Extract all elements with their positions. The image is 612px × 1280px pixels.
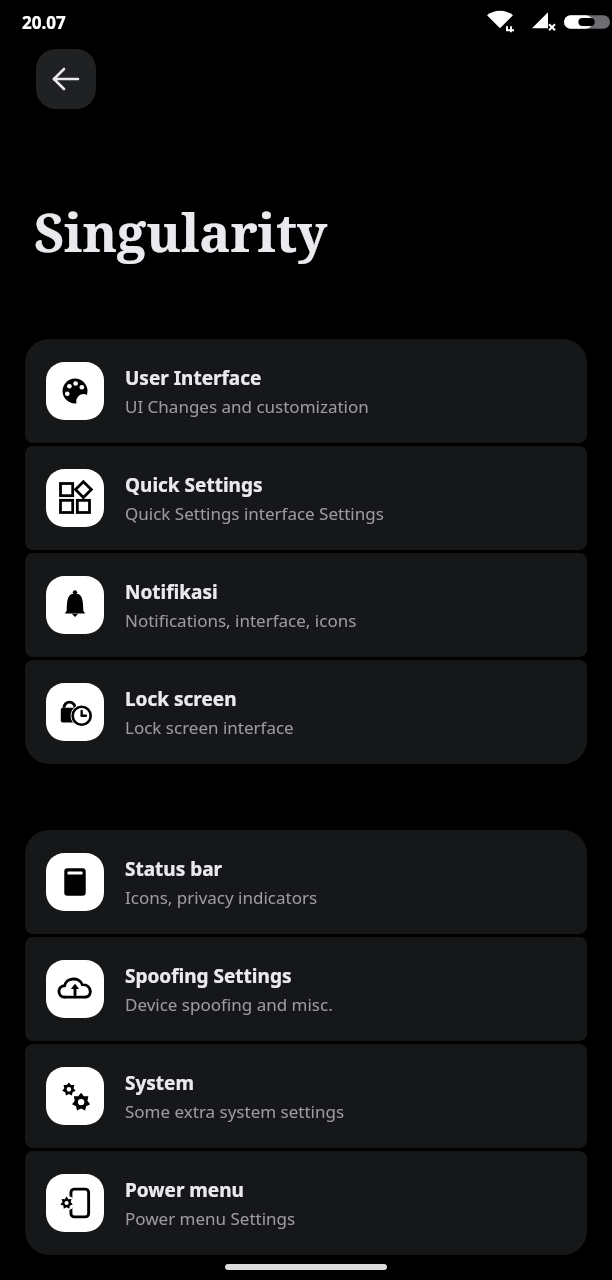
staticText: Singularity	[34, 196, 328, 267]
button[interactable]: Quick Settings	[25, 446, 587, 550]
button[interactable]: Spoofing Settings	[25, 937, 587, 1041]
button[interactable]: System	[25, 1044, 587, 1148]
staticText: 20.07	[22, 11, 66, 34]
staticText: Power menu Settings	[125, 1207, 296, 1230]
button[interactable]: Back	[36, 49, 96, 109]
staticText: Notifications, interface, icons	[125, 609, 357, 632]
staticText: Status bar	[125, 856, 223, 882]
staticText: System	[125, 1070, 194, 1096]
staticText: Spoofing Settings	[125, 963, 292, 989]
staticText: Quick Settings	[125, 472, 263, 498]
staticText: Lock screen	[125, 686, 237, 712]
button[interactable]: Notifikasi	[25, 553, 587, 657]
staticText: UI Changes and customization	[125, 395, 369, 418]
button[interactable]: Power menu	[25, 1151, 587, 1255]
staticText: Power menu	[125, 1177, 244, 1203]
button[interactable]: User Interface	[25, 339, 587, 443]
staticText: Some extra system settings	[125, 1100, 345, 1123]
button[interactable]: Status bar	[25, 830, 587, 934]
staticText: Quick Settings interface Settings	[125, 502, 384, 525]
staticText: User Interface	[125, 365, 262, 391]
staticText: Icons, privacy indicators	[125, 886, 318, 909]
staticText: Lock screen interface	[125, 716, 294, 739]
staticText: Notifikasi	[125, 579, 218, 605]
staticText: Device spoofing and misc.	[125, 993, 333, 1016]
button[interactable]: Lock screen	[25, 660, 587, 764]
